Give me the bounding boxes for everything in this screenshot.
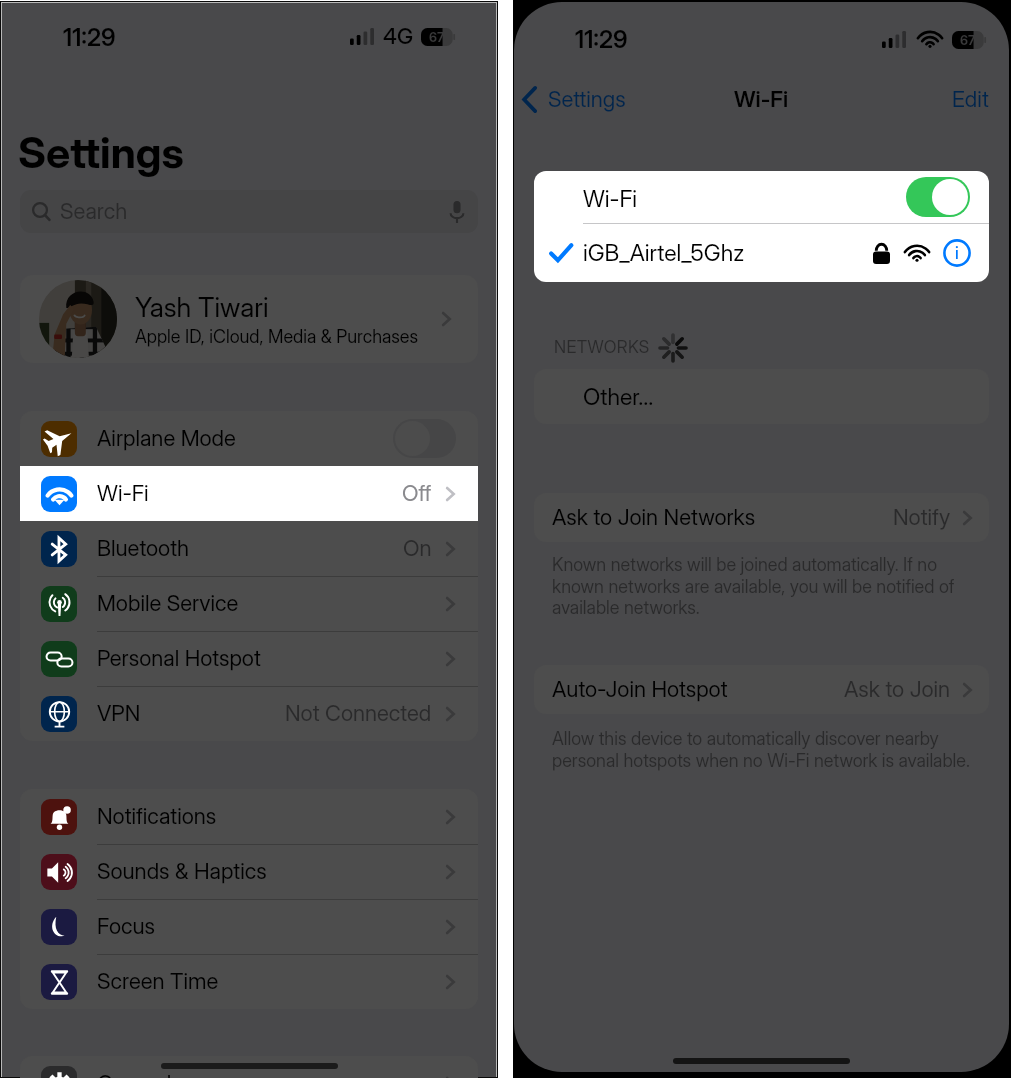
button[interactable]: More info	[943, 239, 971, 267]
staticText: Apple ID, iCloud, Media & Purchases	[135, 326, 419, 348]
button[interactable]: iGB_Airtel_5Ghz	[534, 224, 989, 282]
button[interactable]: Mobile Service	[20, 576, 478, 631]
staticText: Allow this device to automatically disco…	[552, 728, 978, 771]
button[interactable]: Settings	[522, 86, 626, 113]
button[interactable]: General	[20, 1056, 478, 1078]
staticText: iGB_Airtel_5Ghz	[583, 239, 745, 267]
button[interactable]: Personal Hotspot	[20, 631, 478, 686]
button[interactable]: Other...	[534, 369, 989, 424]
button[interactable]: Yash Tiwari	[20, 275, 478, 363]
staticText: Known networks will be joined automatica…	[552, 554, 978, 618]
button[interactable]: Notifications	[20, 789, 478, 844]
staticText: Notifications	[97, 803, 217, 830]
staticText: Search	[60, 198, 128, 225]
staticText: Sounds & Haptics	[97, 858, 267, 885]
staticText: Ask to Join	[844, 676, 951, 703]
staticText: NETWORKS	[554, 337, 650, 358]
staticText: 4G	[383, 23, 413, 50]
staticText: Settings	[18, 126, 184, 178]
button[interactable]: Sounds & Haptics	[20, 844, 478, 899]
staticText: 67	[960, 32, 976, 48]
button[interactable]: Auto-Join Hotspot	[534, 665, 989, 714]
button[interactable]: Search	[20, 190, 478, 233]
button[interactable]: Wi-Fi	[20, 466, 478, 521]
staticText: i	[955, 243, 959, 264]
button[interactable]: Edit	[952, 86, 989, 113]
staticText: Wi-Fi	[734, 86, 789, 113]
button[interactable]: Focus	[20, 899, 478, 954]
button[interactable]: Bluetooth	[20, 521, 478, 576]
staticText: VPN	[97, 700, 141, 727]
staticText: 11:29	[63, 23, 116, 52]
button[interactable]: Screen Time	[20, 954, 478, 1009]
staticText: Not Connected	[285, 700, 432, 727]
staticText: 11:29	[575, 25, 628, 54]
staticText: Airplane Mode	[97, 425, 236, 452]
staticText: Other...	[583, 383, 654, 411]
staticText: Notify	[893, 504, 951, 531]
staticText: 67	[429, 29, 445, 45]
staticText: On	[403, 535, 432, 562]
staticText: Bluetooth	[97, 535, 190, 562]
staticText: Yash Tiwari	[135, 291, 269, 324]
staticText: Auto-Join Hotspot	[552, 676, 728, 703]
staticText: Focus	[97, 913, 156, 940]
staticText: Wi-Fi	[97, 480, 149, 507]
staticText: Ask to Join Networks	[552, 504, 756, 531]
staticText: Settings	[548, 86, 626, 113]
button[interactable]: Airplane Mode	[20, 411, 478, 466]
staticText: Mobile Service	[97, 590, 239, 617]
staticText: Screen Time	[97, 968, 219, 995]
button[interactable]: Ask to Join Networks	[534, 493, 989, 542]
staticText: Off	[402, 480, 432, 507]
staticText: General	[97, 1070, 172, 1078]
staticText: Personal Hotspot	[97, 645, 261, 672]
button[interactable]: VPN	[20, 686, 478, 741]
staticText: Wi-Fi	[583, 185, 637, 213]
button[interactable]: Wi-Fi	[534, 171, 989, 223]
